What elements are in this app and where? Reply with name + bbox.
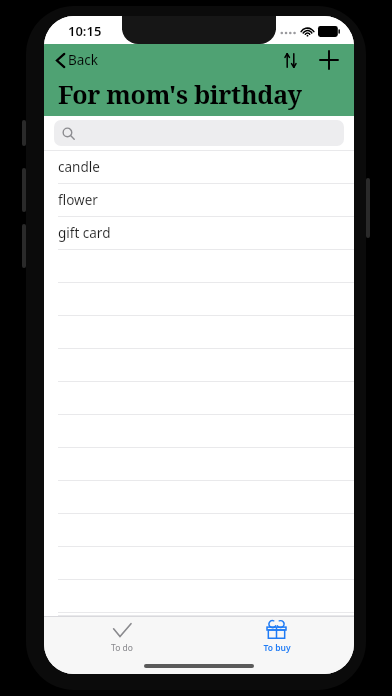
staticText: To do [111, 642, 133, 654]
staticText: For mom's birthday [58, 77, 302, 111]
staticText: Back [68, 51, 99, 69]
button[interactable]: To buy [199, 617, 354, 662]
button[interactable]: To do [44, 617, 199, 662]
staticText: candle [58, 158, 100, 176]
staticText: flower [58, 191, 98, 209]
button[interactable]: Add item [314, 45, 344, 75]
staticText: 10:15 [68, 22, 102, 40]
button[interactable]: Sort [276, 46, 304, 74]
button[interactable]: Back [52, 48, 103, 72]
button[interactable]: Search [54, 120, 344, 146]
button[interactable]: flower [44, 184, 354, 217]
button[interactable]: gift card [44, 217, 354, 250]
staticText: gift card [58, 224, 111, 242]
staticText: To buy [263, 642, 291, 654]
button[interactable]: candle [44, 151, 354, 184]
